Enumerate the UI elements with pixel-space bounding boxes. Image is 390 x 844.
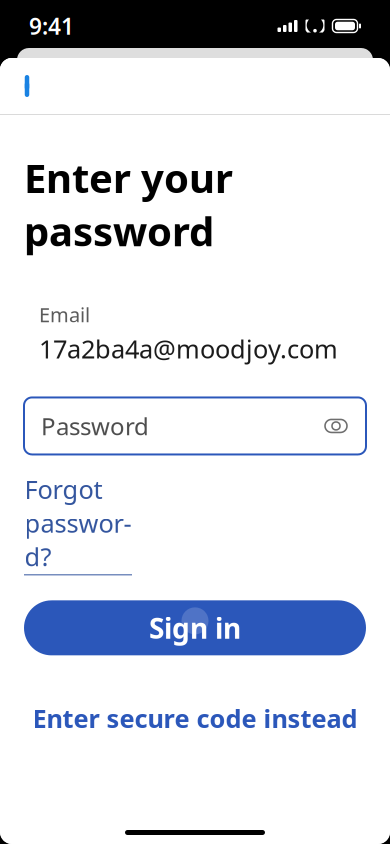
staticText: Enter your password [24, 151, 233, 257]
staticText: Sign in [149, 609, 241, 646]
staticText: Email [39, 301, 90, 328]
button[interactable]: Forgot password? [24, 472, 132, 575]
staticText: Enter secure code instead [32, 701, 357, 735]
staticText: Forgot password? [24, 472, 131, 573]
button[interactable]: Sign in [24, 600, 366, 655]
staticText: Password [41, 410, 149, 442]
button[interactable]: Enter secure code instead [24, 693, 366, 743]
staticText: 17a2ba4a@moodjoy.com [39, 332, 338, 365]
button[interactable]: Password [24, 397, 366, 454]
button[interactable]: Back [0, 58, 58, 114]
staticText: 9:41 [29, 11, 74, 41]
